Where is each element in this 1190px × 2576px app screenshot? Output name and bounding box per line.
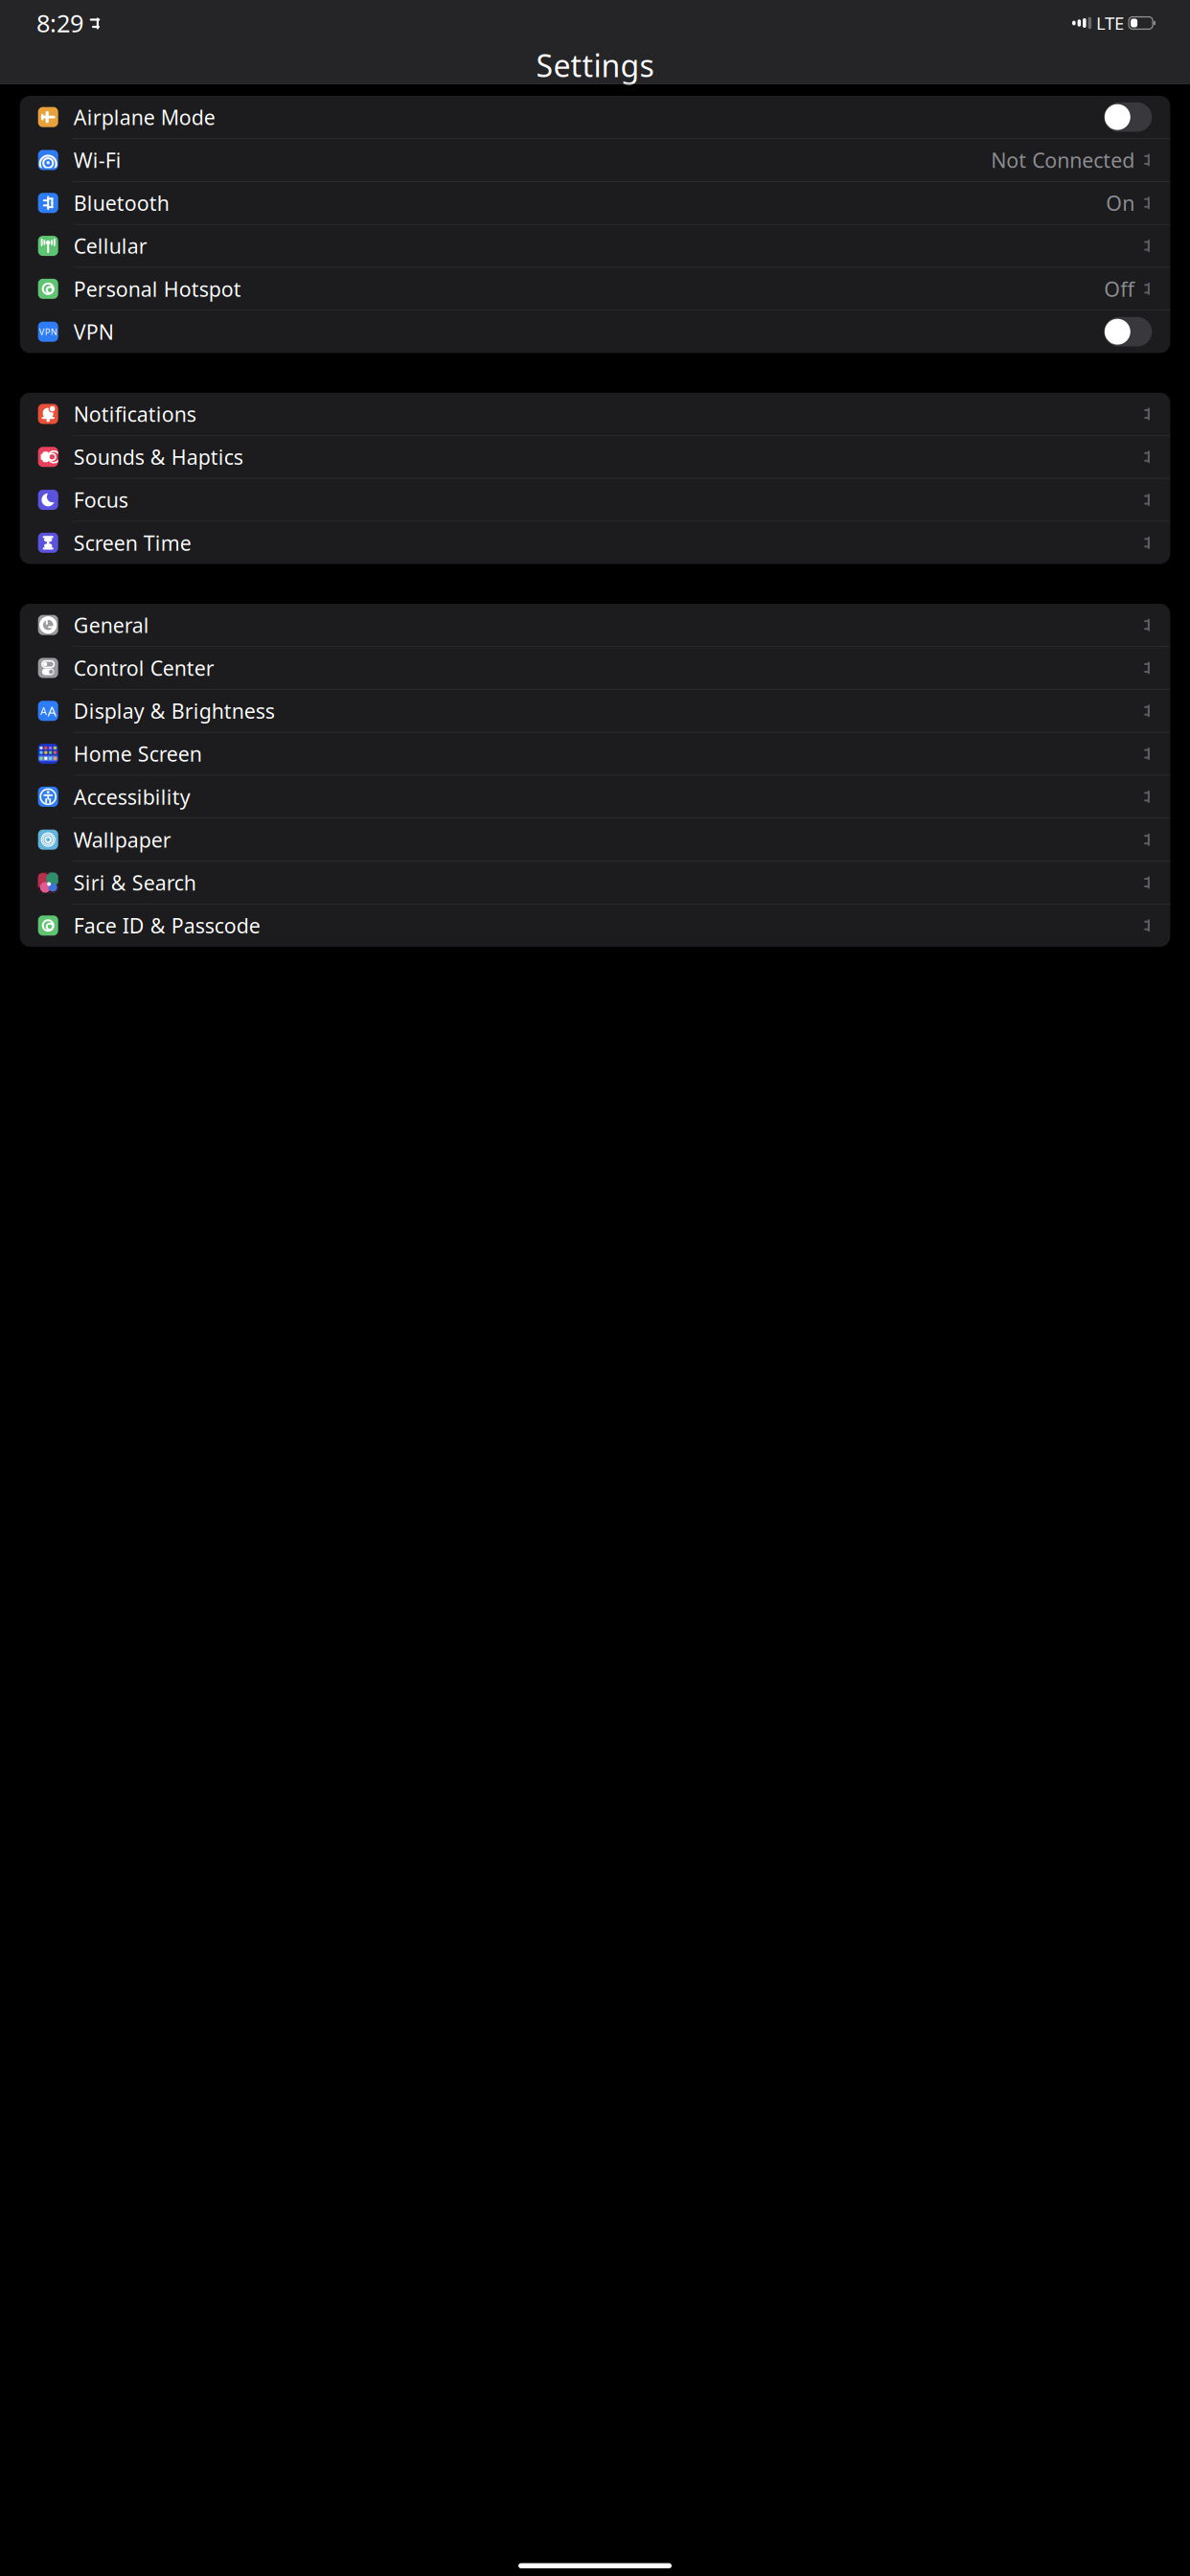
staticText: Airplane Mode (73, 103, 215, 131)
staticText: Bluetooth (73, 189, 169, 216)
button[interactable]: General (20, 604, 1170, 646)
staticText: Not Connected (991, 146, 1135, 174)
staticText: Control Center (73, 654, 214, 681)
staticText: VPN (39, 326, 57, 338)
button[interactable]: Cellular (20, 225, 1170, 267)
button[interactable]: Home Screen (20, 733, 1170, 775)
button[interactable]: Wi-Fi (20, 139, 1170, 181)
button[interactable]: Wallpaper (20, 818, 1170, 861)
button[interactable]: Personal Hotspot (20, 268, 1170, 310)
staticText: LTE (1096, 11, 1124, 35)
staticText: Wallpaper (73, 826, 171, 853)
staticText: Focus (73, 486, 128, 513)
staticText: Display & Brightness (73, 697, 275, 724)
staticText: Home Screen (73, 740, 202, 767)
button[interactable]: Face ID & Passcode (20, 904, 1170, 947)
staticText: 8:29 (36, 7, 83, 39)
button[interactable]: Sounds & Haptics (20, 436, 1170, 478)
staticText: A (40, 704, 47, 718)
button[interactable]: Accessibility (20, 775, 1170, 818)
staticText: A (47, 701, 56, 720)
button[interactable]: Airplane Mode (20, 96, 1170, 138)
staticText: Personal Hotspot (73, 275, 241, 302)
staticText: On (1106, 189, 1135, 216)
staticText: Siri & Search (73, 869, 196, 896)
staticText: Wi-Fi (73, 146, 121, 174)
button[interactable]: A (20, 690, 1170, 732)
staticText: Notifications (73, 400, 196, 428)
staticText: Accessibility (73, 783, 190, 810)
button[interactable]: Notifications (20, 393, 1170, 435)
staticText: Face ID & Passcode (73, 912, 260, 939)
staticText: General (73, 611, 149, 639)
staticText: Settings (536, 45, 654, 86)
button[interactable]: VPN (20, 310, 1170, 353)
staticText: Sounds & Haptics (73, 443, 243, 470)
staticText: VPN (73, 318, 114, 345)
button[interactable]: Screen Time (20, 522, 1170, 564)
staticText: Screen Time (73, 529, 191, 556)
staticText: Off (1104, 275, 1135, 302)
button[interactable]: Siri & Search (20, 861, 1170, 904)
staticText: Cellular (73, 232, 147, 259)
button[interactable]: Bluetooth (20, 182, 1170, 224)
button[interactable]: Focus (20, 479, 1170, 521)
button[interactable]: Control Center (20, 647, 1170, 689)
